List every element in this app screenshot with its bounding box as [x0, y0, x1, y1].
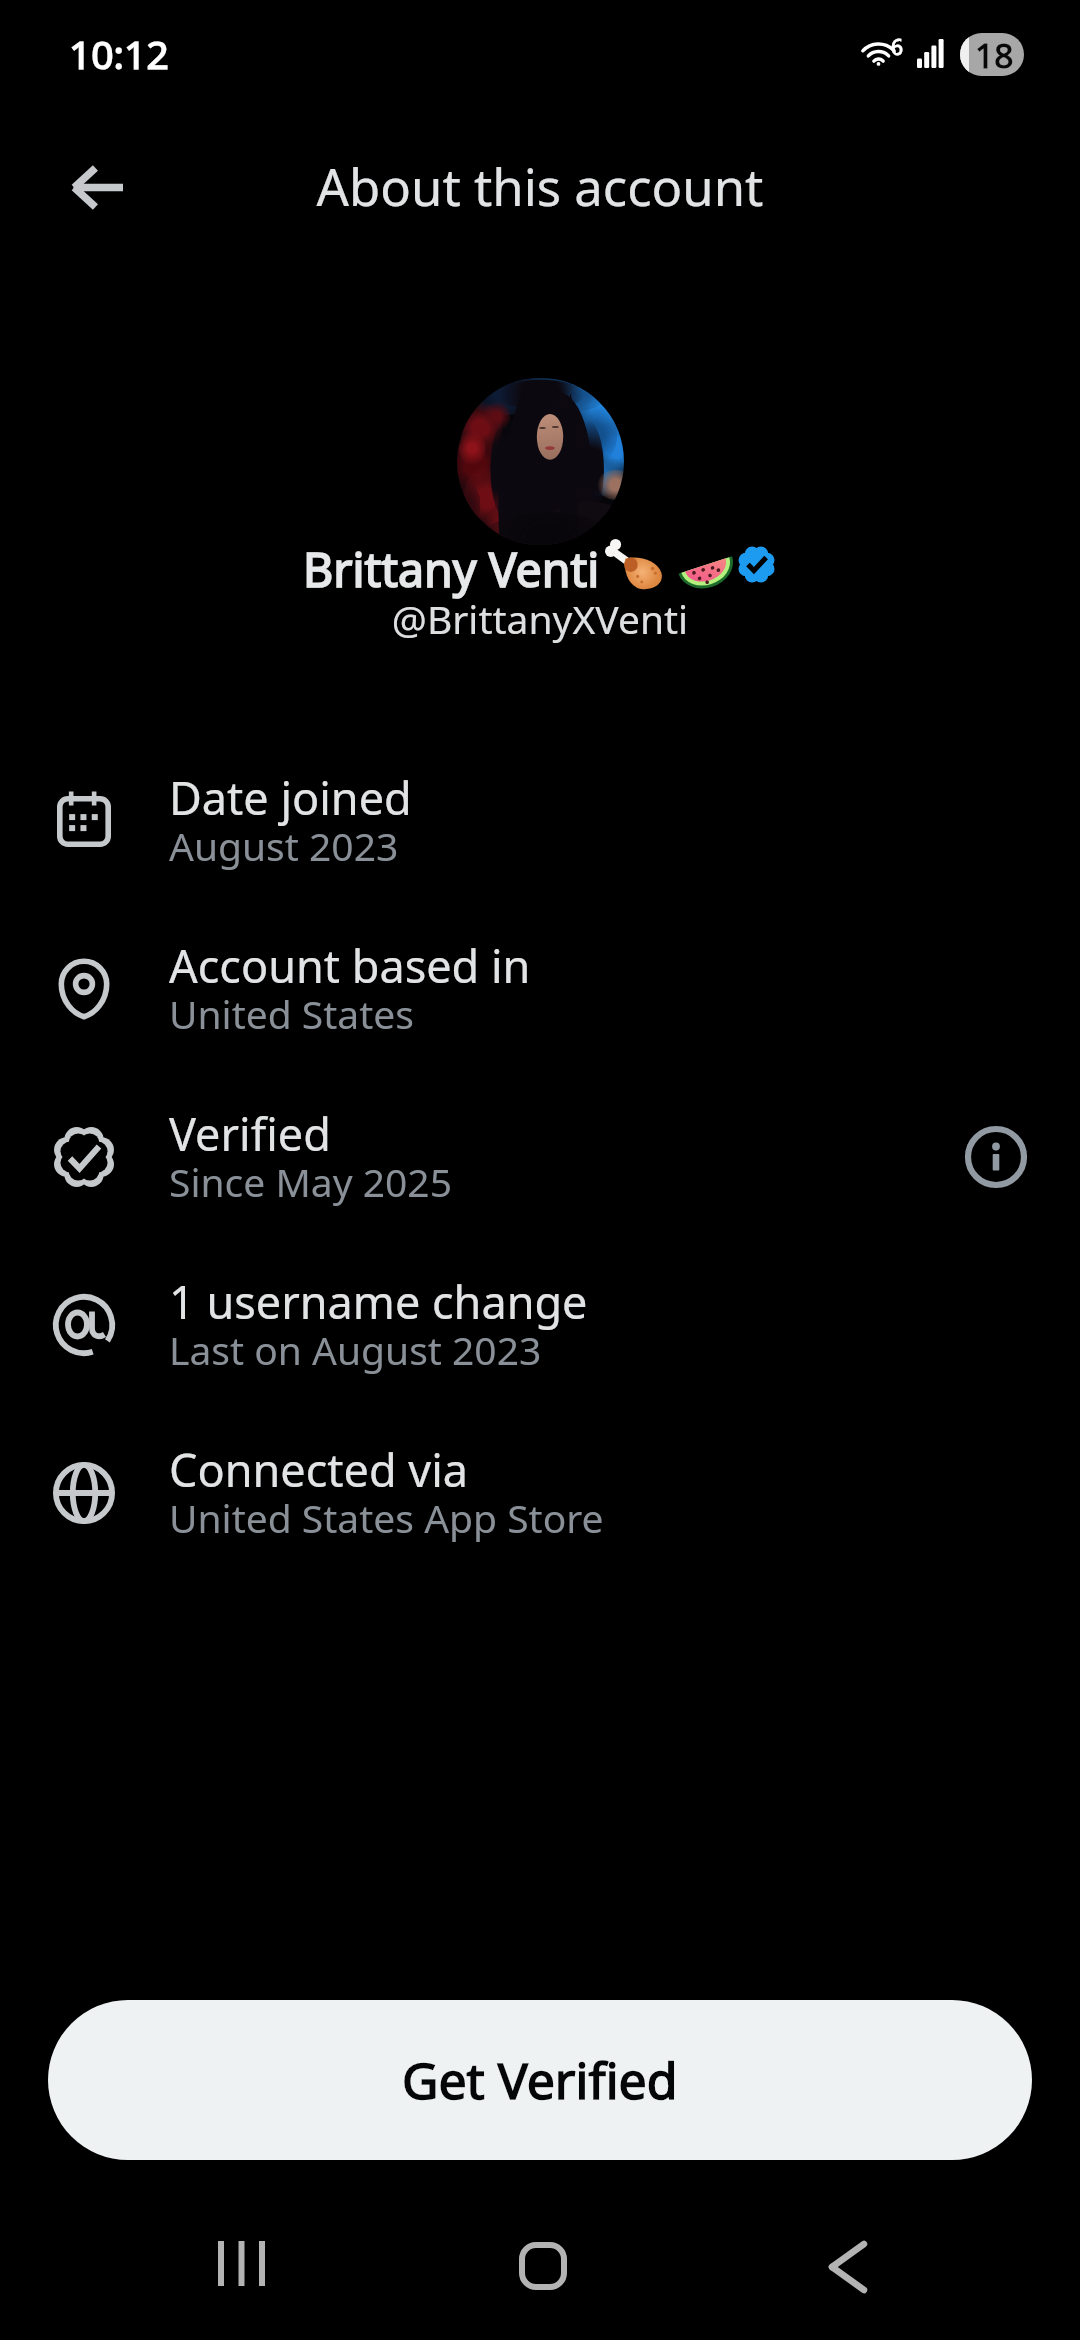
- staticText: Last on August 2023: [169, 1323, 542, 1376]
- staticText: 1 username change: [169, 1271, 588, 1332]
- staticText: Verified: [169, 1103, 331, 1164]
- staticText: Since May 2025: [169, 1155, 452, 1208]
- staticText: Connected via: [169, 1439, 468, 1500]
- staticText: About this account: [0, 152, 1080, 221]
- staticText: 10:12: [69, 27, 169, 80]
- staticText: Brittany Venti: [303, 537, 600, 600]
- staticText: August 2023: [169, 819, 399, 872]
- button[interactable]: Recent apps: [177, 2198, 307, 2328]
- staticText: 18: [975, 33, 1014, 75]
- staticText: United States App Store: [169, 1491, 604, 1544]
- button[interactable]: Account based in: [0, 916, 1080, 1084]
- staticText: Date joined: [169, 767, 412, 828]
- button[interactable]: Get Verified: [48, 2000, 1032, 2160]
- button[interactable]: Back: [39, 129, 155, 245]
- staticText: @BrittanyXVenti: [0, 592, 1080, 645]
- staticText: Account based in: [169, 935, 531, 996]
- button[interactable]: Learn more about verification: [940, 1101, 1052, 1213]
- button[interactable]: Home: [478, 2201, 608, 2331]
- staticText: United States: [169, 987, 414, 1040]
- button[interactable]: Connected via: [0, 1420, 1080, 1588]
- staticText: 6: [891, 33, 904, 62]
- button[interactable]: 1 username change: [0, 1252, 1080, 1420]
- button[interactable]: Back: [783, 2202, 913, 2332]
- button[interactable]: Date joined: [0, 748, 1080, 916]
- button[interactable]: Verified: [0, 1084, 1080, 1252]
- staticText: Get Verified: [402, 2046, 678, 2114]
